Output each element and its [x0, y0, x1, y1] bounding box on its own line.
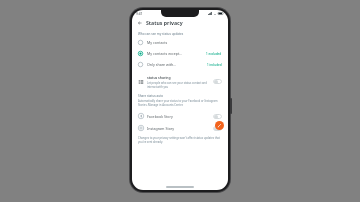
button[interactable]: Facebook Story [132, 110, 228, 122]
button[interactable]: Toggle [213, 126, 222, 131]
staticText: My contacts except... [147, 51, 206, 56]
button[interactable]: Edit [215, 121, 224, 130]
button[interactable]: Toggle [213, 114, 222, 119]
button[interactable]: Only share with... [132, 59, 228, 70]
staticText: 1 excluded [206, 52, 222, 56]
staticText: 1 included [207, 63, 222, 67]
staticText: Let people who can see your status conta… [147, 81, 210, 88]
staticText: status sharing [147, 75, 171, 80]
staticText: Share status auto [138, 94, 164, 98]
staticText: Changes to your privacy settings won't a… [138, 136, 222, 144]
button[interactable]: Instagram Story [132, 122, 228, 134]
staticText: My contacts [147, 40, 222, 45]
staticText: Status privacy [146, 19, 183, 26]
button[interactable]: Toggle [213, 79, 222, 84]
button[interactable]: status sharing [132, 73, 228, 90]
staticText: 9:41 [136, 12, 143, 16]
button[interactable]: My contacts except... [132, 48, 228, 59]
button[interactable]: Back [136, 19, 143, 26]
staticText: Who can see my status updates [138, 32, 184, 36]
staticText: Automatically share your status to your … [138, 99, 222, 107]
button[interactable]: My contacts [132, 37, 228, 48]
staticText: Facebook Story [147, 114, 213, 119]
staticText: Only share with... [147, 62, 207, 67]
staticText: Instagram Story [147, 126, 213, 131]
